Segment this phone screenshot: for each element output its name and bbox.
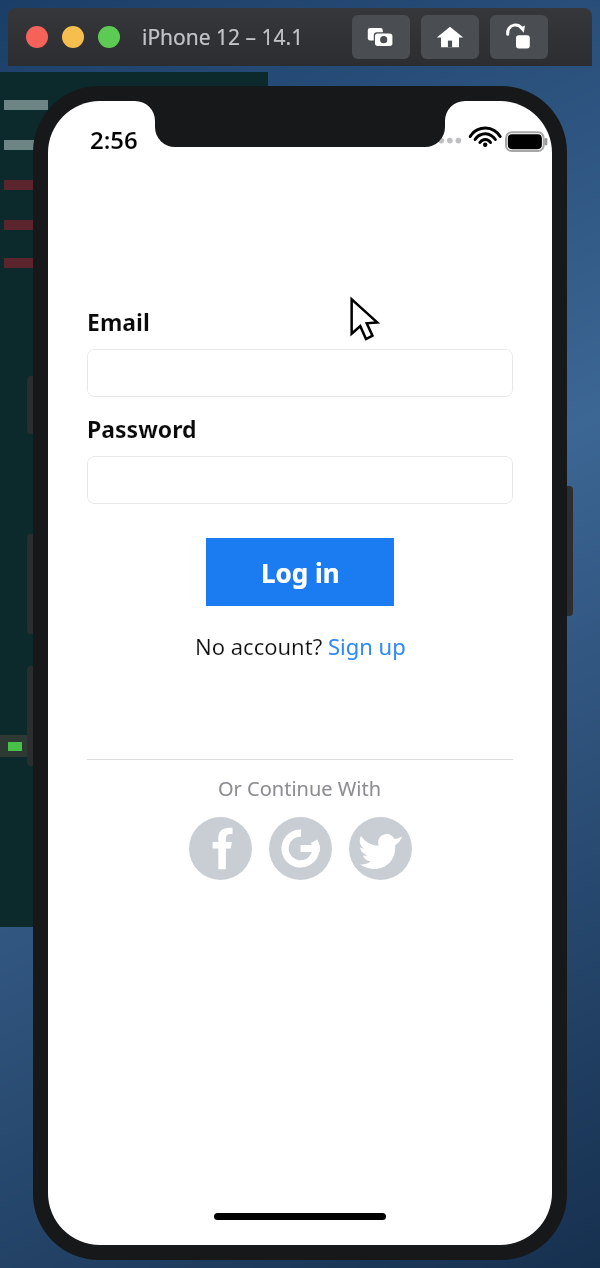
button[interactable]: Rotate <box>490 15 548 59</box>
staticText: Password <box>87 413 197 444</box>
staticText: Sign up <box>328 631 406 661</box>
button[interactable]: Continue with Google <box>269 817 332 880</box>
staticText: No account? <box>195 631 328 661</box>
staticText: 2:56 <box>90 123 138 156</box>
button[interactable]: Minimise <box>62 26 84 48</box>
button[interactable]: Continue with Facebook <box>189 817 252 880</box>
button[interactable]: Home <box>214 1213 386 1220</box>
button[interactable]: Continue with Twitter <box>349 817 412 880</box>
staticText: iPhone 12 – 14.1 <box>142 23 304 52</box>
staticText: Email <box>87 306 150 337</box>
staticText: Log in <box>261 555 340 590</box>
button[interactable]: Password input <box>87 456 513 504</box>
button[interactable]: Close <box>26 26 48 48</box>
button[interactable]: Log in <box>206 538 394 606</box>
button[interactable]: Sign up <box>328 631 406 661</box>
button[interactable]: Screenshot <box>352 15 410 59</box>
button[interactable]: Maximise <box>98 26 120 48</box>
button[interactable]: Email input <box>87 349 513 397</box>
staticText: Or Continue With <box>218 775 382 802</box>
button[interactable]: Home <box>421 15 479 59</box>
